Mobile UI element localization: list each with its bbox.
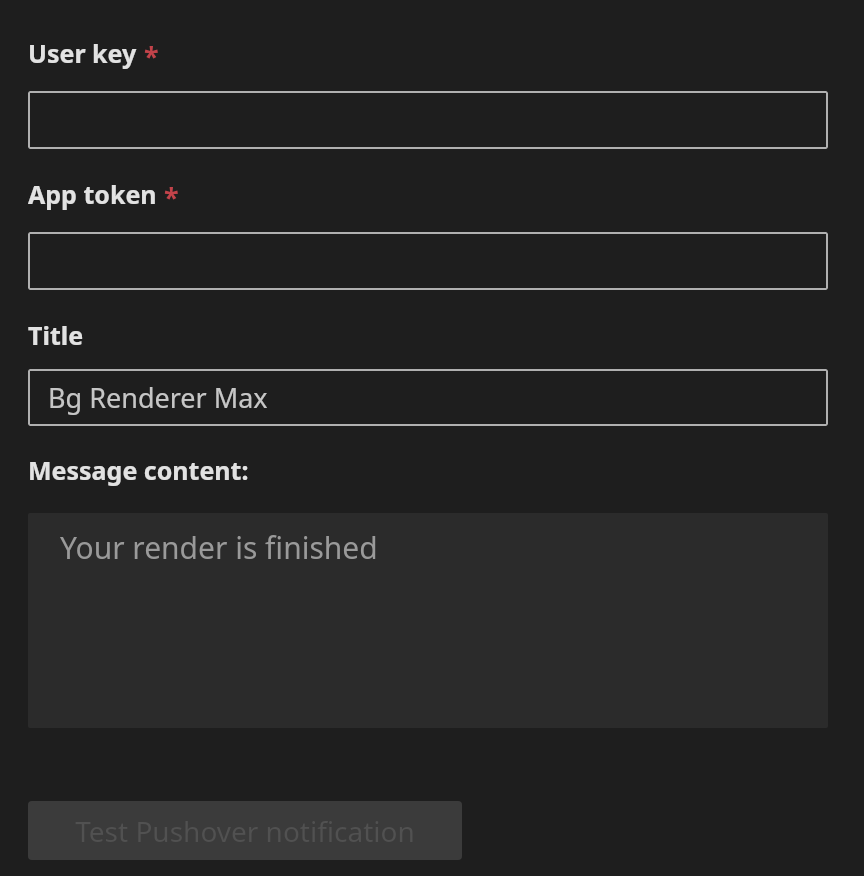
button[interactable]: User key input: [28, 91, 828, 149]
staticText: Title: [28, 318, 84, 352]
button[interactable]: Test Pushover notification: [28, 801, 462, 860]
staticText: *: [144, 38, 159, 75]
staticText: App token: [28, 177, 157, 211]
button[interactable]: Title input: [28, 369, 828, 426]
staticText: Message content:: [28, 453, 249, 487]
staticText: Bg Renderer Max: [48, 379, 268, 416]
staticText: User key: [28, 36, 137, 70]
staticText: Test Pushover notification: [75, 812, 415, 850]
button[interactable]: Message content input: [28, 513, 828, 728]
staticText: Your render is finished: [60, 527, 378, 568]
staticText: *: [164, 179, 179, 216]
button[interactable]: App token input: [28, 232, 828, 290]
